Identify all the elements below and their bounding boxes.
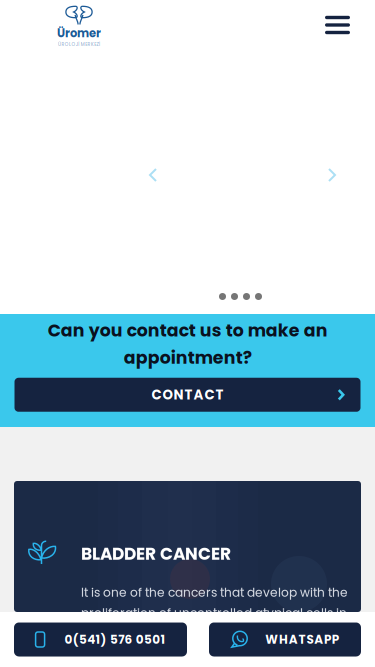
staticText: Üromer	[57, 25, 101, 41]
button[interactable]: Slide 2	[231, 293, 238, 300]
button[interactable]: Menu	[317, 8, 358, 42]
staticText: 0(541) 576 0501	[65, 631, 165, 648]
button[interactable]: 0(541) 576 0501	[14, 622, 187, 656]
button[interactable]: CONTACT	[14, 378, 360, 412]
staticText: Can you contact us to make an appointmen…	[47, 318, 327, 370]
button[interactable]: Üromer	[57, 2, 101, 47]
button[interactable]: Slide 1	[219, 293, 226, 300]
staticText: CONTACT	[151, 385, 223, 404]
button[interactable]: BLADDER CANCER	[14, 481, 361, 612]
staticText: It is one of the cancers that develop wi…	[81, 584, 348, 621]
button[interactable]: WHATSAPP	[209, 622, 361, 656]
staticText: BLADDER CANCER	[81, 542, 231, 566]
button[interactable]: Previous slide	[144, 163, 162, 187]
staticText: WHATSAPP	[265, 631, 339, 648]
button[interactable]: Slide 4	[255, 293, 262, 300]
button[interactable]: Slide 3	[243, 293, 250, 300]
staticText: ÜROLOJİ MERKEZİ	[58, 41, 100, 47]
button[interactable]: Next slide	[323, 163, 341, 187]
